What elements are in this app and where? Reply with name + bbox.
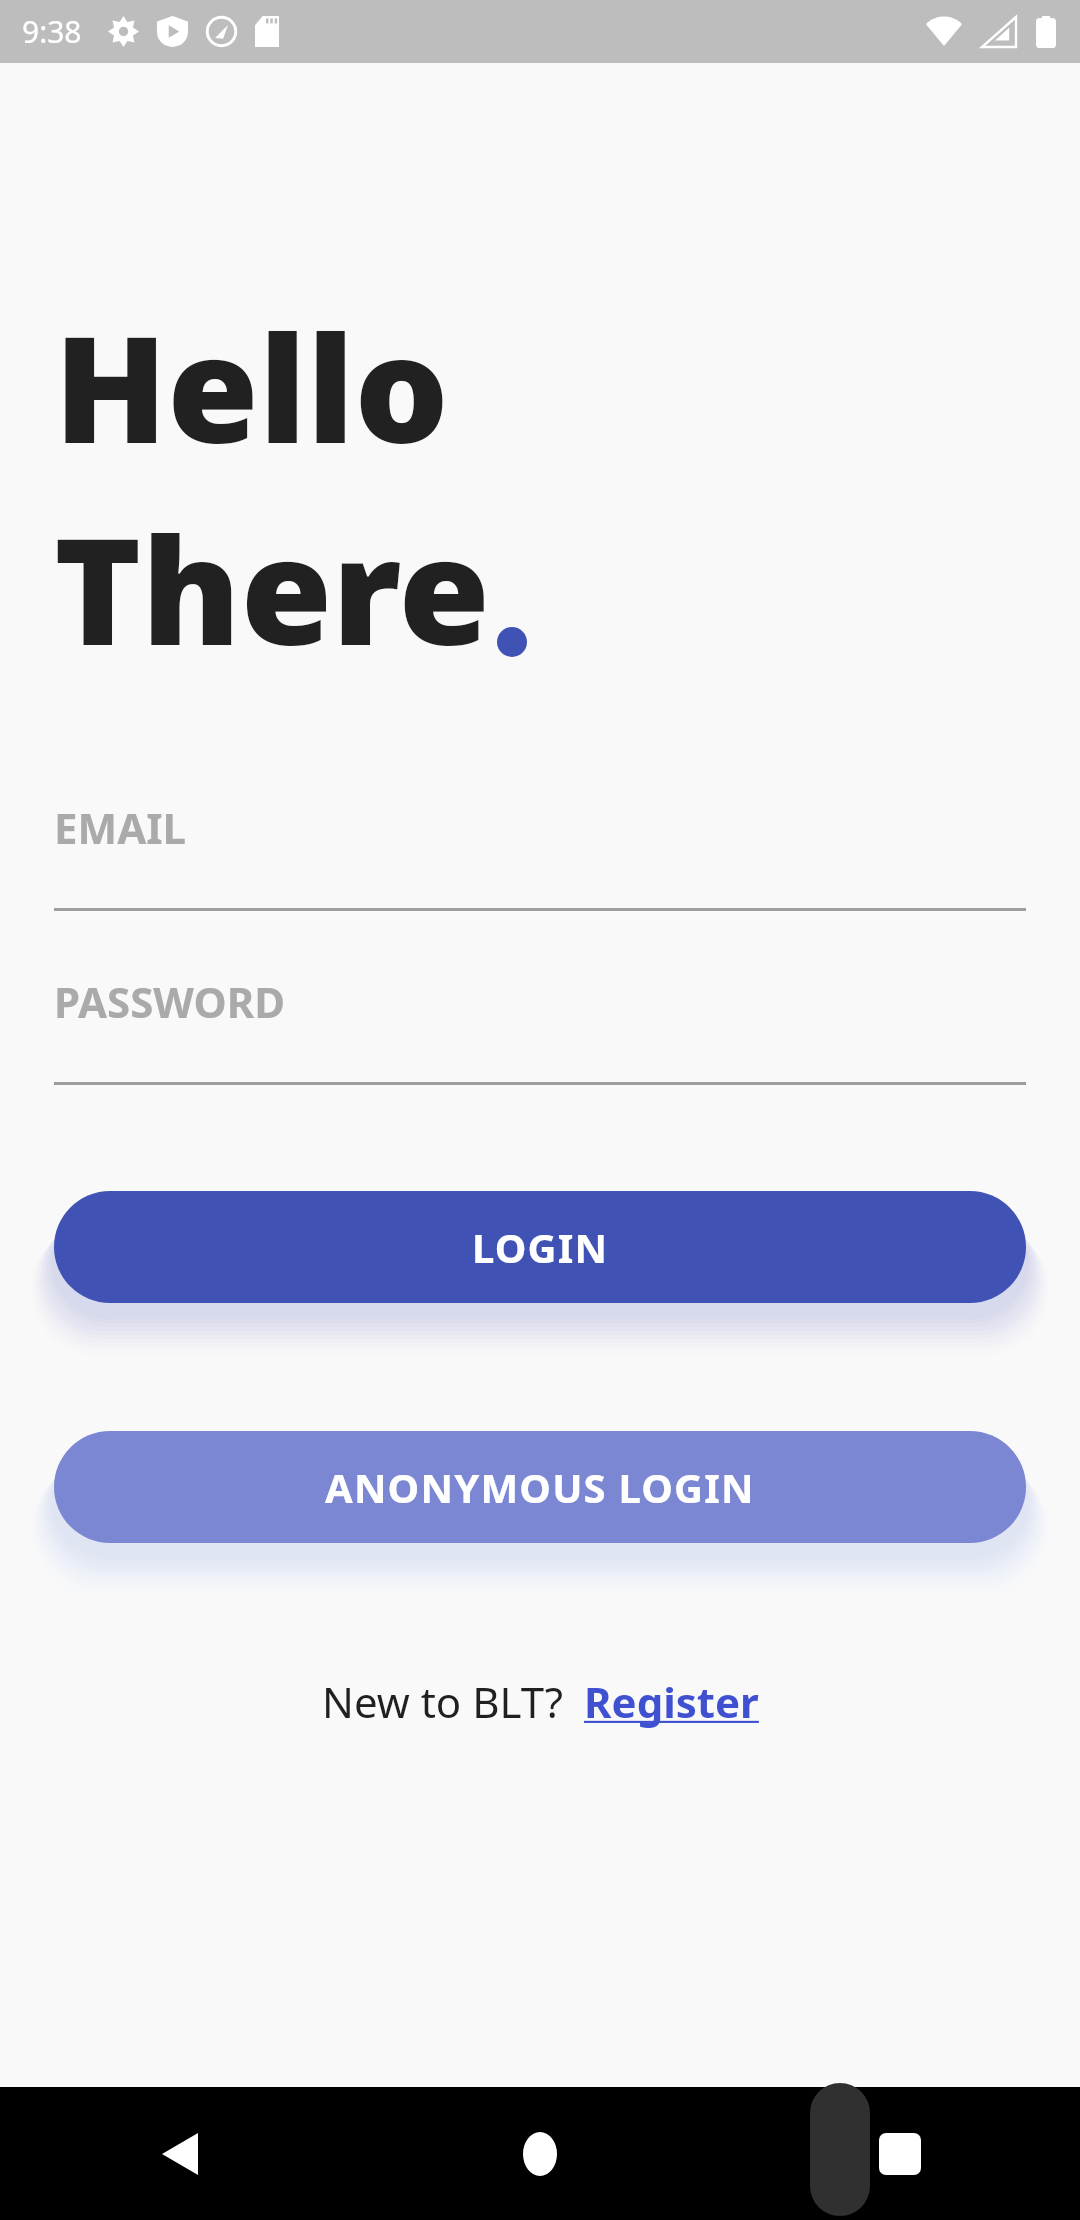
- button[interactable]: LOGIN: [54, 1191, 1026, 1303]
- staticText: EMAIL: [54, 799, 187, 856]
- button[interactable]: Back: [0, 2087, 360, 2220]
- staticText: PASSWORD: [54, 973, 286, 1030]
- staticText: There: [54, 487, 491, 689]
- staticText: Hello: [54, 285, 449, 487]
- button[interactable]: EMAIL: [54, 799, 1026, 911]
- button[interactable]: PASSWORD: [54, 973, 1026, 1085]
- staticText: New to BLT?: [322, 1673, 564, 1730]
- button[interactable]: Recent apps: [720, 2087, 1080, 2220]
- staticText: Register: [584, 1673, 759, 1730]
- staticText: LOGIN: [472, 1220, 609, 1274]
- staticText: 9:38: [22, 11, 82, 52]
- staticText: ANONYMOUS LOGIN: [325, 1460, 755, 1514]
- button[interactable]: ANONYMOUS LOGIN: [54, 1431, 1026, 1543]
- button[interactable]: Register: [584, 1673, 759, 1730]
- button[interactable]: Home: [360, 2087, 720, 2220]
